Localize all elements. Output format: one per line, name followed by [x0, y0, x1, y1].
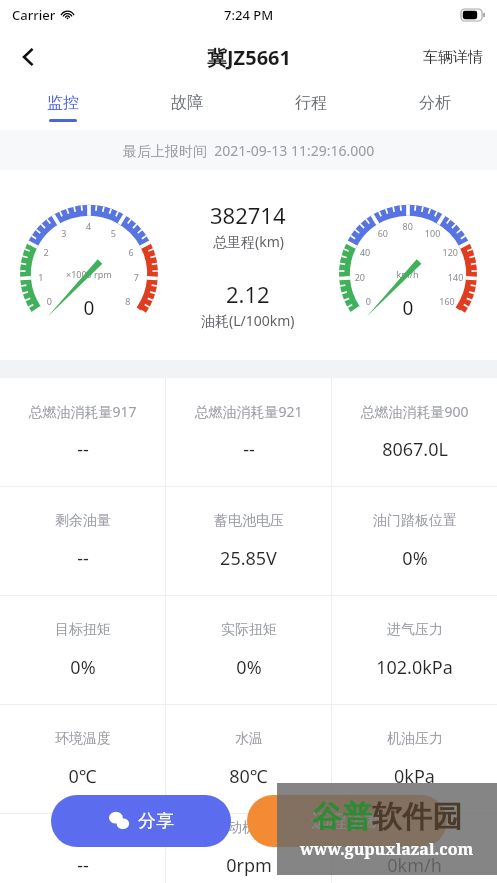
- staticText: Carrier: [12, 6, 56, 24]
- staticText: 行程: [295, 93, 327, 113]
- staticText: 分析: [419, 93, 451, 113]
- staticText: 发动机转速: [214, 819, 284, 837]
- staticText: 总燃油消耗量921: [194, 402, 303, 421]
- button[interactable]: 分享: [51, 795, 231, 847]
- staticText: 蓄电池电压: [214, 512, 284, 530]
- button[interactable]: 实际扭矩: [166, 596, 331, 704]
- staticText: 382714: [210, 200, 286, 230]
- staticText: 平均油耗: [55, 819, 111, 837]
- staticText: 冀JZ5661: [207, 44, 291, 71]
- button[interactable]: 车辆详情: [419, 42, 487, 73]
- staticText: 0km/h: [387, 853, 442, 878]
- staticText: --: [243, 437, 255, 462]
- staticText: 谷普: [312, 798, 372, 836]
- staticText: --: [77, 437, 89, 462]
- button[interactable]: 车速: [332, 814, 497, 883]
- staticText: 软件园: [372, 798, 462, 836]
- staticText: 80℃: [229, 764, 268, 789]
- staticText: 远程诊断: [311, 810, 383, 833]
- staticText: 0%: [402, 546, 428, 571]
- staticText: 总燃油消耗量900: [360, 402, 469, 421]
- staticText: 车辆详情: [423, 48, 483, 67]
- staticText: --: [77, 853, 89, 878]
- staticText: 分享: [138, 810, 174, 833]
- button[interactable]: 总燃油消耗量917: [0, 378, 165, 486]
- staticText: 目标扭矩: [55, 621, 111, 639]
- staticText: 实际扭矩: [221, 621, 277, 639]
- button[interactable]: 行程: [249, 84, 373, 130]
- staticText: 0kPa: [394, 764, 435, 789]
- staticText: 环境温度: [55, 730, 111, 748]
- button[interactable]: 故障: [125, 84, 249, 130]
- staticText: www.gupuxlazal.com: [300, 838, 474, 860]
- staticText: 油耗(L/100km): [201, 311, 295, 330]
- button[interactable]: 分析: [373, 84, 497, 130]
- button[interactable]: 机油压力: [332, 705, 497, 813]
- button[interactable]: 监控: [0, 84, 125, 130]
- button[interactable]: 进气压力: [332, 596, 497, 704]
- button[interactable]: 油门踏板位置: [332, 487, 497, 595]
- button[interactable]: 总燃油消耗量921: [166, 378, 331, 486]
- button[interactable]: Back: [6, 35, 50, 79]
- button[interactable]: 发动机转速: [166, 814, 331, 883]
- button[interactable]: 总燃油消耗量900: [332, 378, 497, 486]
- button[interactable]: 剩余油量: [0, 487, 165, 595]
- staticText: --: [77, 546, 89, 571]
- staticText: 0rpm: [226, 853, 272, 878]
- staticText: 剩余油量: [55, 512, 111, 530]
- staticText: 车速: [401, 819, 429, 837]
- staticText: 进气压力: [387, 621, 443, 639]
- staticText: 0℃: [68, 764, 97, 789]
- staticText: 故障: [171, 93, 203, 113]
- staticText: 0%: [236, 655, 262, 680]
- button[interactable]: 蓄电池电压: [166, 487, 331, 595]
- staticText: 7:24 PM: [224, 6, 274, 24]
- staticText: 25.85V: [220, 546, 277, 571]
- staticText: 监控: [47, 93, 79, 113]
- staticText: 2.12: [226, 279, 270, 309]
- staticText: 总燃油消耗量917: [28, 402, 137, 421]
- button[interactable]: 环境温度: [0, 705, 165, 813]
- staticText: 0%: [70, 655, 96, 680]
- staticText: 总里程(km): [213, 232, 284, 251]
- staticText: 最后上报时间 2021-09-13 11:29:16.000: [123, 141, 375, 160]
- button[interactable]: 平均油耗: [0, 814, 165, 883]
- button[interactable]: 目标扭矩: [0, 596, 165, 704]
- staticText: 8067.0L: [382, 437, 448, 462]
- staticText: 102.0kPa: [376, 655, 453, 680]
- staticText: 油门踏板位置: [373, 512, 457, 530]
- button[interactable]: 远程诊断: [247, 795, 447, 847]
- staticText: 水温: [235, 730, 263, 748]
- button[interactable]: 水温: [166, 705, 331, 813]
- staticText: 机油压力: [387, 730, 443, 748]
